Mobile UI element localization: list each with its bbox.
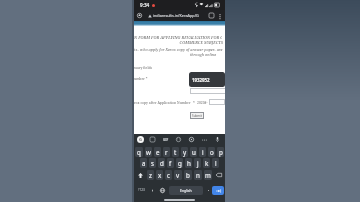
staticText: , <box>152 186 154 193</box>
button[interactable]: a <box>140 158 147 168</box>
button[interactable]: Backspace <box>214 170 224 180</box>
button[interactable]: Stickers <box>148 135 157 144</box>
staticText: through online <box>134 52 216 57</box>
staticText: s <box>151 159 154 167</box>
button[interactable]: q <box>135 147 143 157</box>
button[interactable]: y <box>181 147 188 157</box>
staticText: GIF <box>163 138 169 142</box>
button[interactable]: n <box>194 170 202 180</box>
button[interactable]: Submit <box>190 112 204 119</box>
button[interactable]: Settings <box>187 135 196 144</box>
staticText: 1932952 <box>192 77 210 83</box>
button[interactable]: d <box>158 158 165 168</box>
staticText: r <box>165 148 168 156</box>
button[interactable]: v <box>174 170 182 180</box>
staticText: G <box>139 137 142 142</box>
button[interactable] <box>190 88 225 94</box>
staticText: . <box>208 186 210 193</box>
staticText: v <box>176 171 180 179</box>
staticText: z <box>149 171 152 179</box>
staticText: umber * <box>134 76 148 81</box>
button[interactable]: z <box>147 170 154 180</box>
button[interactable]: s <box>149 158 156 168</box>
button[interactable]: l <box>212 158 219 168</box>
staticText: p <box>219 148 223 156</box>
staticText: 2020#- <box>197 100 208 105</box>
staticText: g <box>178 159 182 167</box>
staticText: * <box>193 100 195 105</box>
staticText: b <box>186 171 190 179</box>
staticText: c <box>167 171 170 179</box>
staticText: n <box>196 171 200 179</box>
button[interactable]: m <box>204 170 212 180</box>
staticText: f <box>169 159 172 167</box>
button[interactable]: indiaresults.in/KeraApp/G <box>148 10 207 21</box>
staticText: 9:34 <box>140 2 150 8</box>
staticText: h <box>187 159 191 167</box>
staticText: x <box>158 171 162 179</box>
button[interactable] <box>209 99 225 105</box>
button[interactable]: r <box>163 147 170 157</box>
staticText: a <box>142 159 146 167</box>
staticText: ?123 <box>138 188 145 192</box>
staticText: ssary fields <box>134 65 153 70</box>
staticText: i <box>202 148 204 156</box>
button[interactable]: t <box>172 147 179 157</box>
button[interactable]: 1932952 <box>189 72 225 87</box>
button[interactable]: u <box>190 147 197 157</box>
staticText: t <box>174 148 177 156</box>
button[interactable]: w <box>145 147 152 157</box>
button[interactable]: Emoji <box>174 135 183 144</box>
button[interactable]: k <box>203 158 210 168</box>
staticText: ON FORM FOR APPLYING REVALUATION FOR GOV <box>134 35 222 40</box>
button[interactable]: i <box>199 147 206 157</box>
staticText: o <box>210 148 214 156</box>
staticText: English <box>180 188 192 193</box>
button[interactable]: h <box>185 158 192 168</box>
button[interactable]: Next field <box>212 186 224 195</box>
button[interactable]: ?123 <box>134 185 148 195</box>
staticText: q <box>137 148 141 156</box>
staticText: y <box>183 148 187 156</box>
button[interactable]: Period <box>205 185 212 195</box>
button[interactable]: GIF <box>161 135 170 144</box>
staticText: d <box>160 159 164 167</box>
staticText: Submit <box>192 114 203 118</box>
staticText: indiaresults.in/KeraApp/G <box>153 13 199 18</box>
button[interactable]: b <box>184 170 192 180</box>
button[interactable]: c <box>165 170 172 180</box>
staticText: w <box>146 148 151 156</box>
button[interactable]: j <box>194 158 201 168</box>
staticText: e <box>156 148 160 156</box>
button[interactable]: Home <box>135 11 144 20</box>
button[interactable]: More <box>200 135 209 144</box>
staticText: u <box>192 148 196 156</box>
button[interactable]: Comma <box>148 185 157 195</box>
button[interactable]: e <box>154 147 161 157</box>
staticText: l <box>215 159 217 167</box>
staticText: m <box>205 171 211 179</box>
button[interactable]: English <box>169 186 203 195</box>
staticText: rox copy after Application Number <box>134 100 191 105</box>
button[interactable]: More options <box>216 12 224 20</box>
button[interactable]: Change language <box>157 185 168 195</box>
button[interactable]: g <box>176 158 183 168</box>
button[interactable]: f <box>167 158 174 168</box>
button[interactable]: x <box>156 170 163 180</box>
button[interactable]: p <box>217 147 224 157</box>
button[interactable]: Open tabs <box>207 11 216 20</box>
staticText: ts.. who apply for Xerox copy of answer … <box>134 47 223 52</box>
button[interactable]: Shift <box>135 170 145 180</box>
staticText: k <box>205 159 209 167</box>
button[interactable]: o <box>208 147 215 157</box>
button[interactable]: Google Assistant <box>137 136 144 143</box>
button[interactable]: Voice input <box>213 135 222 144</box>
staticText: j <box>197 159 199 167</box>
staticText: COMMERCE SUBJECTS <box>134 40 223 45</box>
